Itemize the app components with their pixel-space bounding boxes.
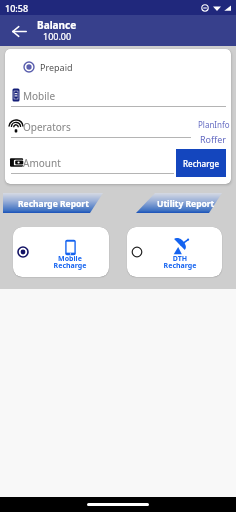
staticText: Mobile [23, 89, 56, 103]
button[interactable]: Recharge Report [3, 193, 103, 213]
staticText: Utility Report [157, 198, 215, 210]
staticText: 100.00 [43, 30, 72, 42]
staticText: DTH [156, 254, 204, 264]
staticText: Recharge [183, 158, 220, 169]
staticText: Recharge [46, 261, 94, 271]
button[interactable]: Back [6, 18, 32, 44]
staticText: Balance [37, 18, 77, 32]
staticText: Recharge [156, 261, 204, 271]
staticText: Recharge Report [18, 198, 89, 210]
button[interactable]: Roffer [200, 133, 227, 145]
staticText: Operators [23, 120, 71, 134]
button[interactable]: Recharge [176, 149, 226, 177]
button[interactable]: PlanInfo [198, 119, 230, 130]
staticText: 10:58 [5, 2, 29, 14]
button[interactable]: Mobile [13, 227, 109, 277]
button[interactable]: DTH [127, 227, 222, 277]
button[interactable]: Prepaid [23, 61, 73, 73]
staticText: Amount [23, 156, 61, 170]
staticText: Mobile [46, 254, 94, 264]
button[interactable]: Utility Report [136, 193, 222, 213]
staticText: Prepaid [40, 61, 73, 73]
